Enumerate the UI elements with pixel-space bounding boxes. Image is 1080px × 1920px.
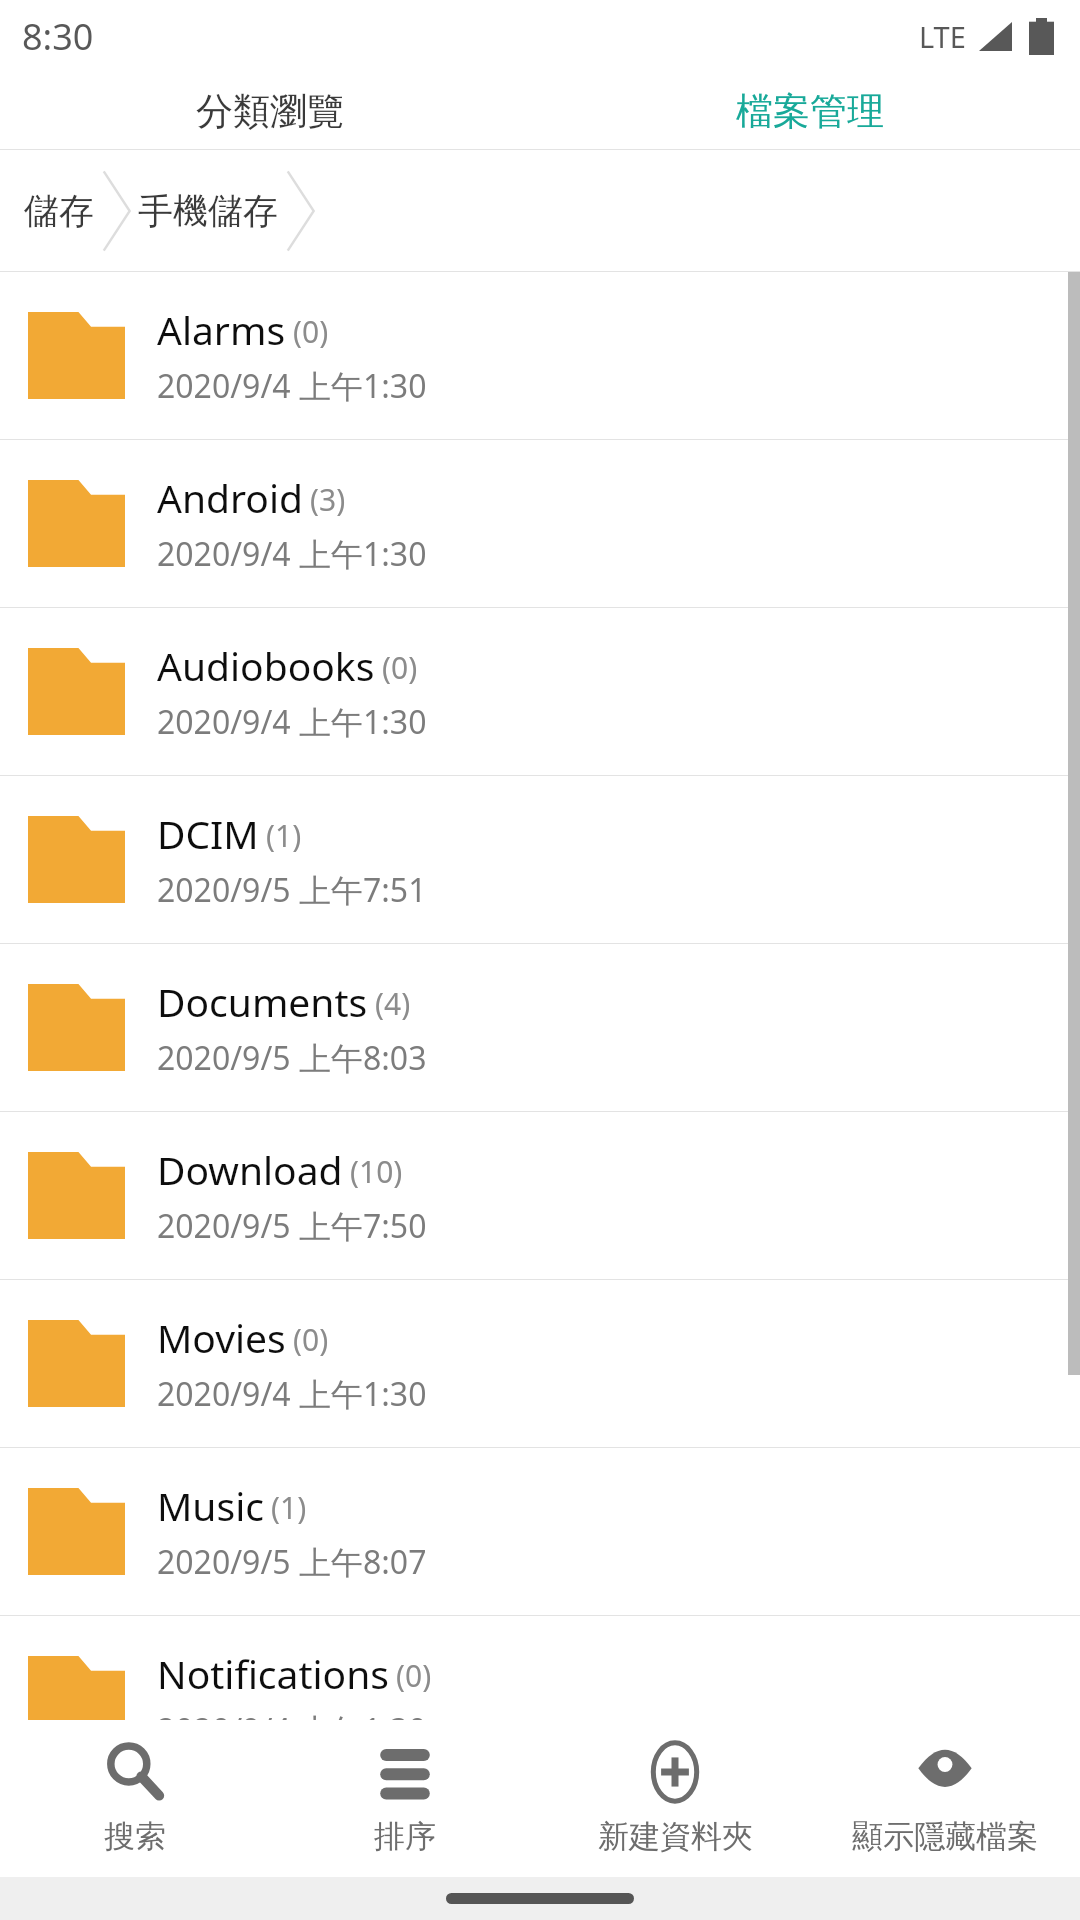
- button[interactable]: Audiobooks: [0, 608, 1080, 775]
- other: 排序: [374, 1741, 436, 1803]
- staticText: (0): [396, 1655, 432, 1696]
- button[interactable]: Notifications: [0, 1616, 1080, 1783]
- staticText: 分類瀏覽: [196, 88, 344, 135]
- button[interactable]: 手機儲存: [134, 169, 282, 253]
- other: 搜索: [104, 1741, 166, 1803]
- staticText: 2020/9/5 上午8:07: [157, 1540, 427, 1584]
- button[interactable]: DCIM: [0, 776, 1080, 943]
- button[interactable]: Pictures: [0, 1784, 1080, 1920]
- staticText: 2020/9/5 上午7:51: [157, 868, 427, 912]
- button[interactable]: Android: [0, 440, 1080, 607]
- staticText: 儲存: [24, 189, 94, 233]
- staticText: Download: [157, 1143, 343, 1196]
- button[interactable]: 儲存: [20, 169, 98, 253]
- staticText: 排序: [374, 1817, 436, 1856]
- staticText: 2020/9/4 上午1:30: [157, 1372, 427, 1416]
- staticText: Notifications: [157, 1647, 389, 1700]
- staticText: Alarms: [157, 303, 286, 356]
- staticText: 2020/9/4 上午1:30: [157, 1708, 427, 1752]
- staticText: (0): [293, 311, 329, 352]
- staticText: 8:30: [22, 12, 94, 61]
- button[interactable]: 檔案管理: [540, 72, 1080, 150]
- staticText: 2020/9/5 上午8:12: [157, 1861, 427, 1905]
- staticText: Movies: [157, 1311, 286, 1364]
- staticText: Pictures: [157, 1800, 304, 1853]
- other: 新建資料夾: [644, 1741, 706, 1803]
- staticText: 新建資料夾: [598, 1817, 753, 1856]
- button[interactable]: 顯示隱藏檔案: [810, 1720, 1080, 1877]
- staticText: Audiobooks: [157, 639, 375, 692]
- staticText: Android: [157, 471, 303, 524]
- staticText: (0): [382, 647, 418, 688]
- staticText: 手機儲存: [138, 189, 278, 233]
- staticText: DCIM: [157, 807, 259, 860]
- button[interactable]: Alarms: [0, 272, 1080, 439]
- staticText: (0): [293, 1319, 329, 1360]
- staticText: (1): [271, 1487, 307, 1528]
- staticText: (10): [350, 1151, 403, 1192]
- staticText: 2020/9/5 上午8:03: [157, 1036, 427, 1080]
- button[interactable]: Music: [0, 1448, 1080, 1615]
- button[interactable]: Documents: [0, 944, 1080, 1111]
- button[interactable]: 新建資料夾: [540, 1720, 810, 1877]
- staticText: (4): [375, 983, 411, 1024]
- staticText: (1): [266, 815, 302, 856]
- staticText: 搜索: [104, 1817, 166, 1856]
- button[interactable]: 搜索: [0, 1720, 270, 1877]
- staticText: 2020/9/4 上午1:30: [157, 532, 427, 576]
- other: 顯示隱藏檔案: [914, 1741, 976, 1803]
- button[interactable]: 分類瀏覽: [0, 72, 540, 150]
- staticText: Music: [157, 1479, 264, 1532]
- button[interactable]: Download: [0, 1112, 1080, 1279]
- button[interactable]: Movies: [0, 1280, 1080, 1447]
- staticText: 顯示隱藏檔案: [852, 1817, 1038, 1856]
- staticText: LTE: [919, 17, 966, 56]
- staticText: 2020/9/5 上午7:50: [157, 1204, 427, 1248]
- button[interactable]: 排序: [270, 1720, 540, 1877]
- staticText: 2020/9/4 上午1:30: [157, 364, 427, 408]
- staticText: 檔案管理: [736, 88, 884, 135]
- staticText: (3): [310, 479, 346, 520]
- staticText: 2020/9/4 上午1:30: [157, 700, 427, 744]
- staticText: Documents: [157, 975, 368, 1028]
